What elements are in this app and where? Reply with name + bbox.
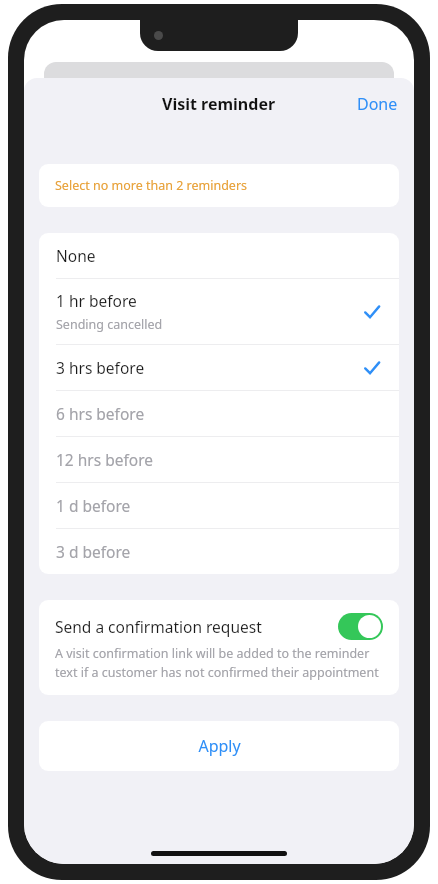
staticText: 6 hrs before [56, 403, 145, 424]
button[interactable]: None [39, 233, 399, 279]
button[interactable]: Send a confirmation request toggle [338, 613, 383, 640]
staticText: Done [357, 93, 398, 115]
button[interactable]: 12 hrs before [39, 437, 399, 483]
staticText: 12 hrs before [56, 449, 154, 470]
staticText: Visit reminder [162, 93, 276, 115]
staticText: Sending cancelled [56, 316, 163, 333]
button[interactable]: Done [341, 85, 414, 123]
button[interactable]: 1 d before [39, 483, 399, 529]
button[interactable]: 3 d before [39, 529, 399, 574]
staticText: 1 hr before [56, 290, 137, 311]
staticText: A visit confirmation link will be added … [55, 645, 379, 681]
staticText: 1 d before [56, 495, 131, 516]
button[interactable]: 3 hrs before [39, 345, 399, 391]
staticText: Select no more than 2 reminders [55, 177, 248, 194]
button[interactable]: Apply [39, 721, 399, 771]
staticText: Send a confirmation request [55, 616, 338, 637]
staticText: 3 d before [56, 541, 131, 562]
staticText: Apply [198, 735, 241, 757]
staticText: None [56, 245, 96, 266]
staticText: 3 hrs before [56, 357, 145, 378]
button[interactable]: 6 hrs before [39, 391, 399, 437]
button[interactable]: 1 hr before [39, 279, 399, 345]
